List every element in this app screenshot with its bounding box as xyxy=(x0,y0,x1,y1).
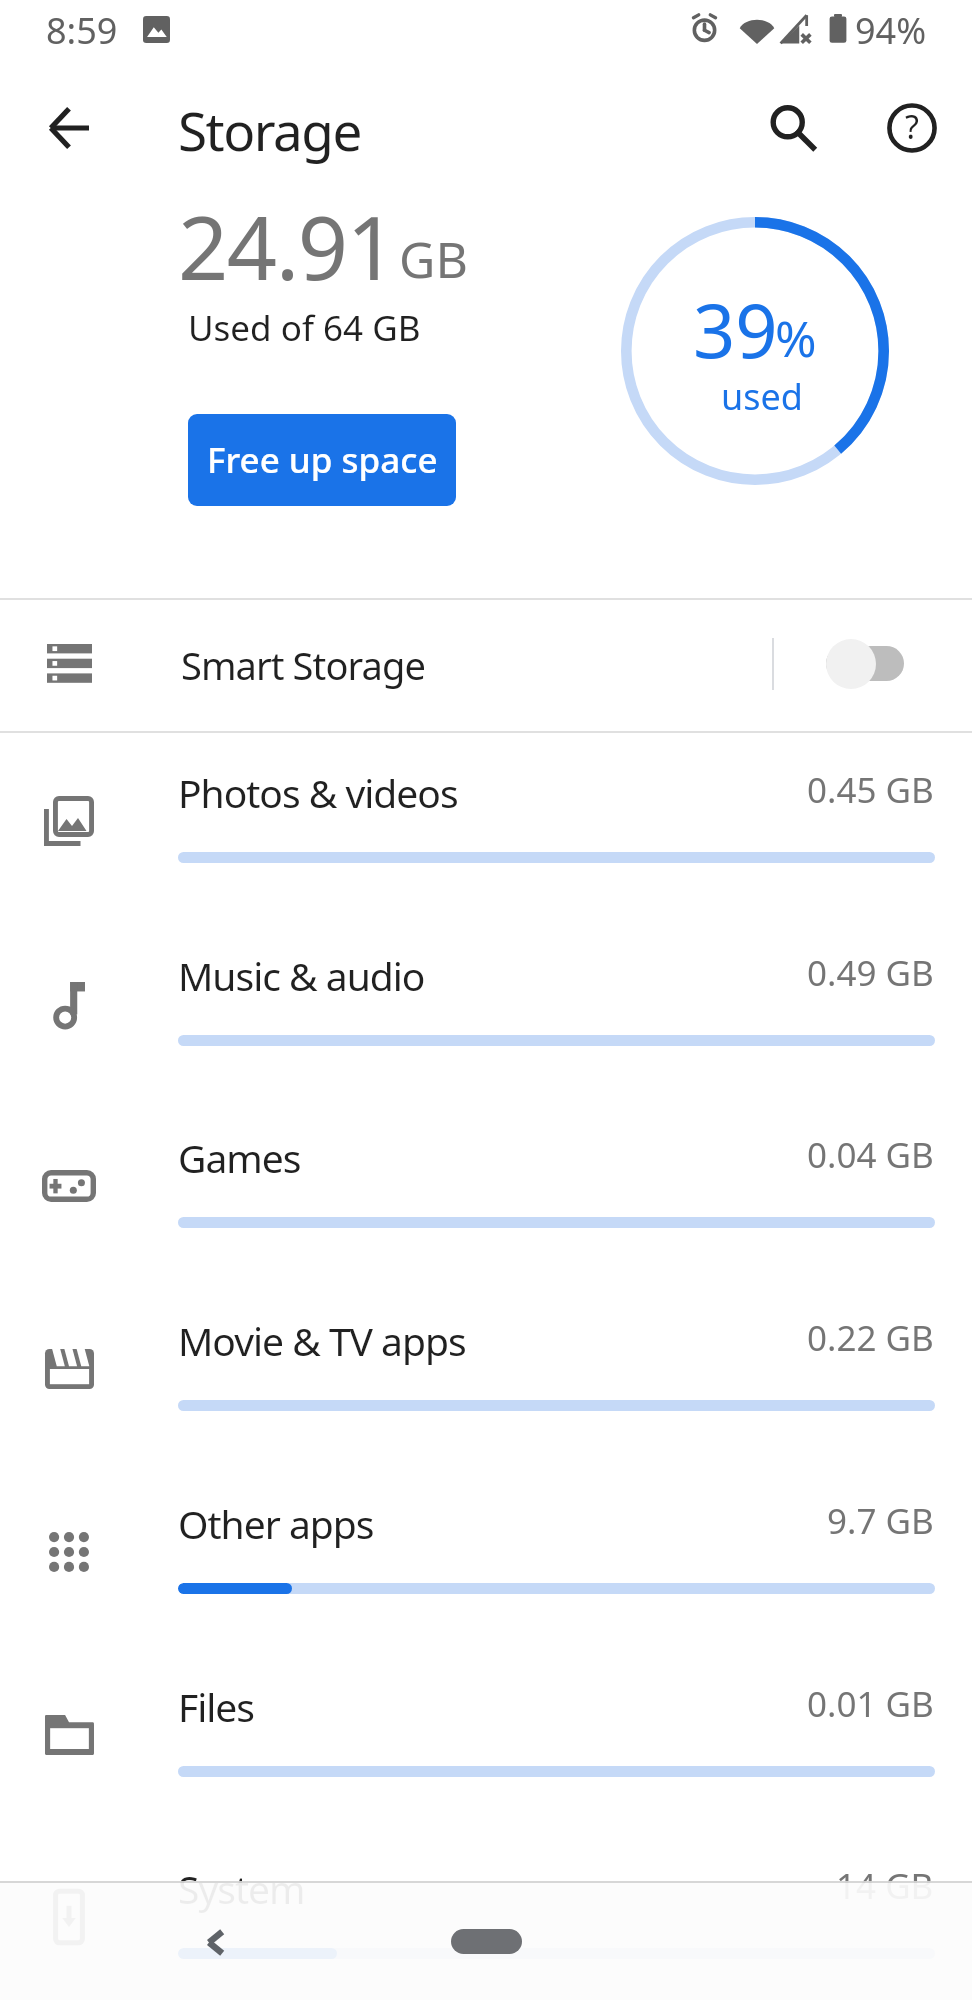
staticText: 0.22 GB xyxy=(807,1314,934,1362)
staticText: 39 xyxy=(693,279,778,380)
staticText: System xyxy=(178,1862,305,1915)
button[interactable]: Free up space xyxy=(188,414,456,506)
staticText: 0.45 GB xyxy=(807,766,934,814)
staticText: used xyxy=(721,372,803,421)
staticText: Games xyxy=(178,1131,301,1184)
staticText: GB xyxy=(399,225,468,293)
button[interactable]: Back xyxy=(34,93,104,163)
staticText: 0.04 GB xyxy=(807,1131,934,1179)
staticText: 0.01 GB xyxy=(807,1680,934,1728)
button[interactable]: Files xyxy=(0,1680,972,1863)
button[interactable]: Music & audio xyxy=(0,949,972,1132)
staticText: 14 GB xyxy=(836,1862,934,1910)
staticText: 8:59 xyxy=(46,6,118,55)
staticText: Movie & TV apps xyxy=(178,1314,466,1367)
staticText: Storage xyxy=(178,94,361,166)
button[interactable]: Smart Storage toggle xyxy=(810,630,922,702)
staticText: 24.91 xyxy=(178,186,396,306)
button[interactable]: Photos & videos xyxy=(0,766,972,949)
staticText: 9.7 GB xyxy=(827,1497,934,1545)
staticText: Smart Storage xyxy=(181,639,425,691)
staticText: Music & audio xyxy=(178,949,425,1002)
button[interactable]: Back xyxy=(175,1902,255,1982)
staticText: Used of 64 GB xyxy=(188,304,421,352)
button[interactable]: Help xyxy=(873,89,951,167)
staticText: Free up space xyxy=(207,436,438,484)
button[interactable]: Other apps xyxy=(0,1497,972,1680)
button[interactable]: Movie & TV apps xyxy=(0,1314,972,1497)
staticText: 0.49 GB xyxy=(807,949,934,997)
button[interactable]: Smart Storage xyxy=(0,600,972,731)
staticText: 94% xyxy=(855,6,927,55)
button[interactable]: Home xyxy=(406,1917,566,1965)
staticText: Photos & videos xyxy=(178,766,458,819)
button[interactable]: System xyxy=(0,1862,972,2000)
staticText: ? xyxy=(905,105,919,149)
staticText: Other apps xyxy=(178,1497,374,1550)
button[interactable]: Games xyxy=(0,1131,972,1314)
button[interactable]: Search xyxy=(753,88,833,168)
staticText: % xyxy=(775,304,817,372)
staticText: Files xyxy=(178,1680,255,1733)
